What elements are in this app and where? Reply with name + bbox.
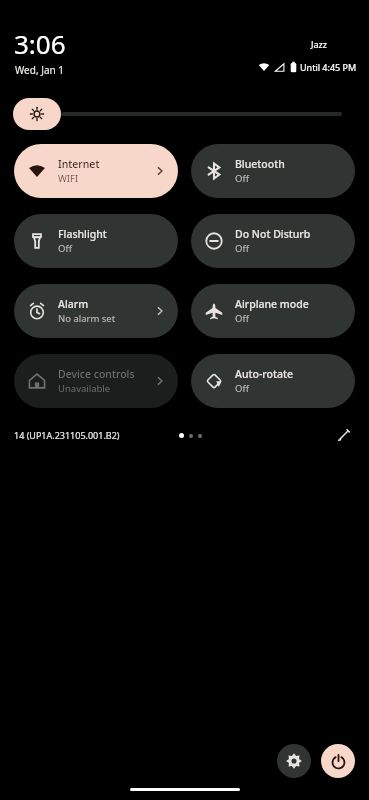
staticText: WIFI <box>58 172 79 185</box>
button[interactable]: Device controls <box>14 354 178 408</box>
staticText: Until 4:45 PM <box>300 61 357 73</box>
staticText: Jazz <box>311 38 327 50</box>
staticText: 3:06 <box>14 26 66 61</box>
staticText: Airplane mode <box>235 297 309 311</box>
staticText: Off <box>235 312 249 325</box>
button[interactable]: Power <box>321 744 355 778</box>
staticText: Unavailable <box>58 382 111 395</box>
button[interactable]: Do Not Disturb <box>191 214 355 268</box>
button[interactable]: Internet <box>14 144 178 198</box>
button[interactable]: Flashlight <box>14 214 178 268</box>
staticText: Alarm <box>58 297 89 311</box>
button[interactable]: Bluetooth <box>191 144 355 198</box>
staticText: Off <box>235 242 249 255</box>
button[interactable]: Airplane mode <box>191 284 355 338</box>
staticText: Auto-rotate <box>235 367 293 381</box>
staticText: No alarm set <box>58 312 116 325</box>
staticText: Bluetooth <box>235 157 285 171</box>
button[interactable]: Auto-rotate <box>191 354 355 408</box>
staticText: Wed, Jan 1 <box>15 63 65 77</box>
button[interactable]: Edit tiles <box>333 424 355 446</box>
staticText: Do Not Disturb <box>235 227 311 241</box>
staticText: Off <box>235 172 249 185</box>
button[interactable]: Settings <box>277 744 311 778</box>
staticText: Flashlight <box>58 227 107 241</box>
staticText: 14 (UP1A.231105.001.B2) <box>14 429 120 441</box>
button[interactable]: Brightness <box>13 98 61 130</box>
button[interactable]: Alarm <box>14 284 178 338</box>
staticText: Off <box>235 382 249 395</box>
staticText: Internet <box>58 157 100 171</box>
staticText: Off <box>58 242 72 255</box>
staticText: Device controls <box>58 367 135 381</box>
